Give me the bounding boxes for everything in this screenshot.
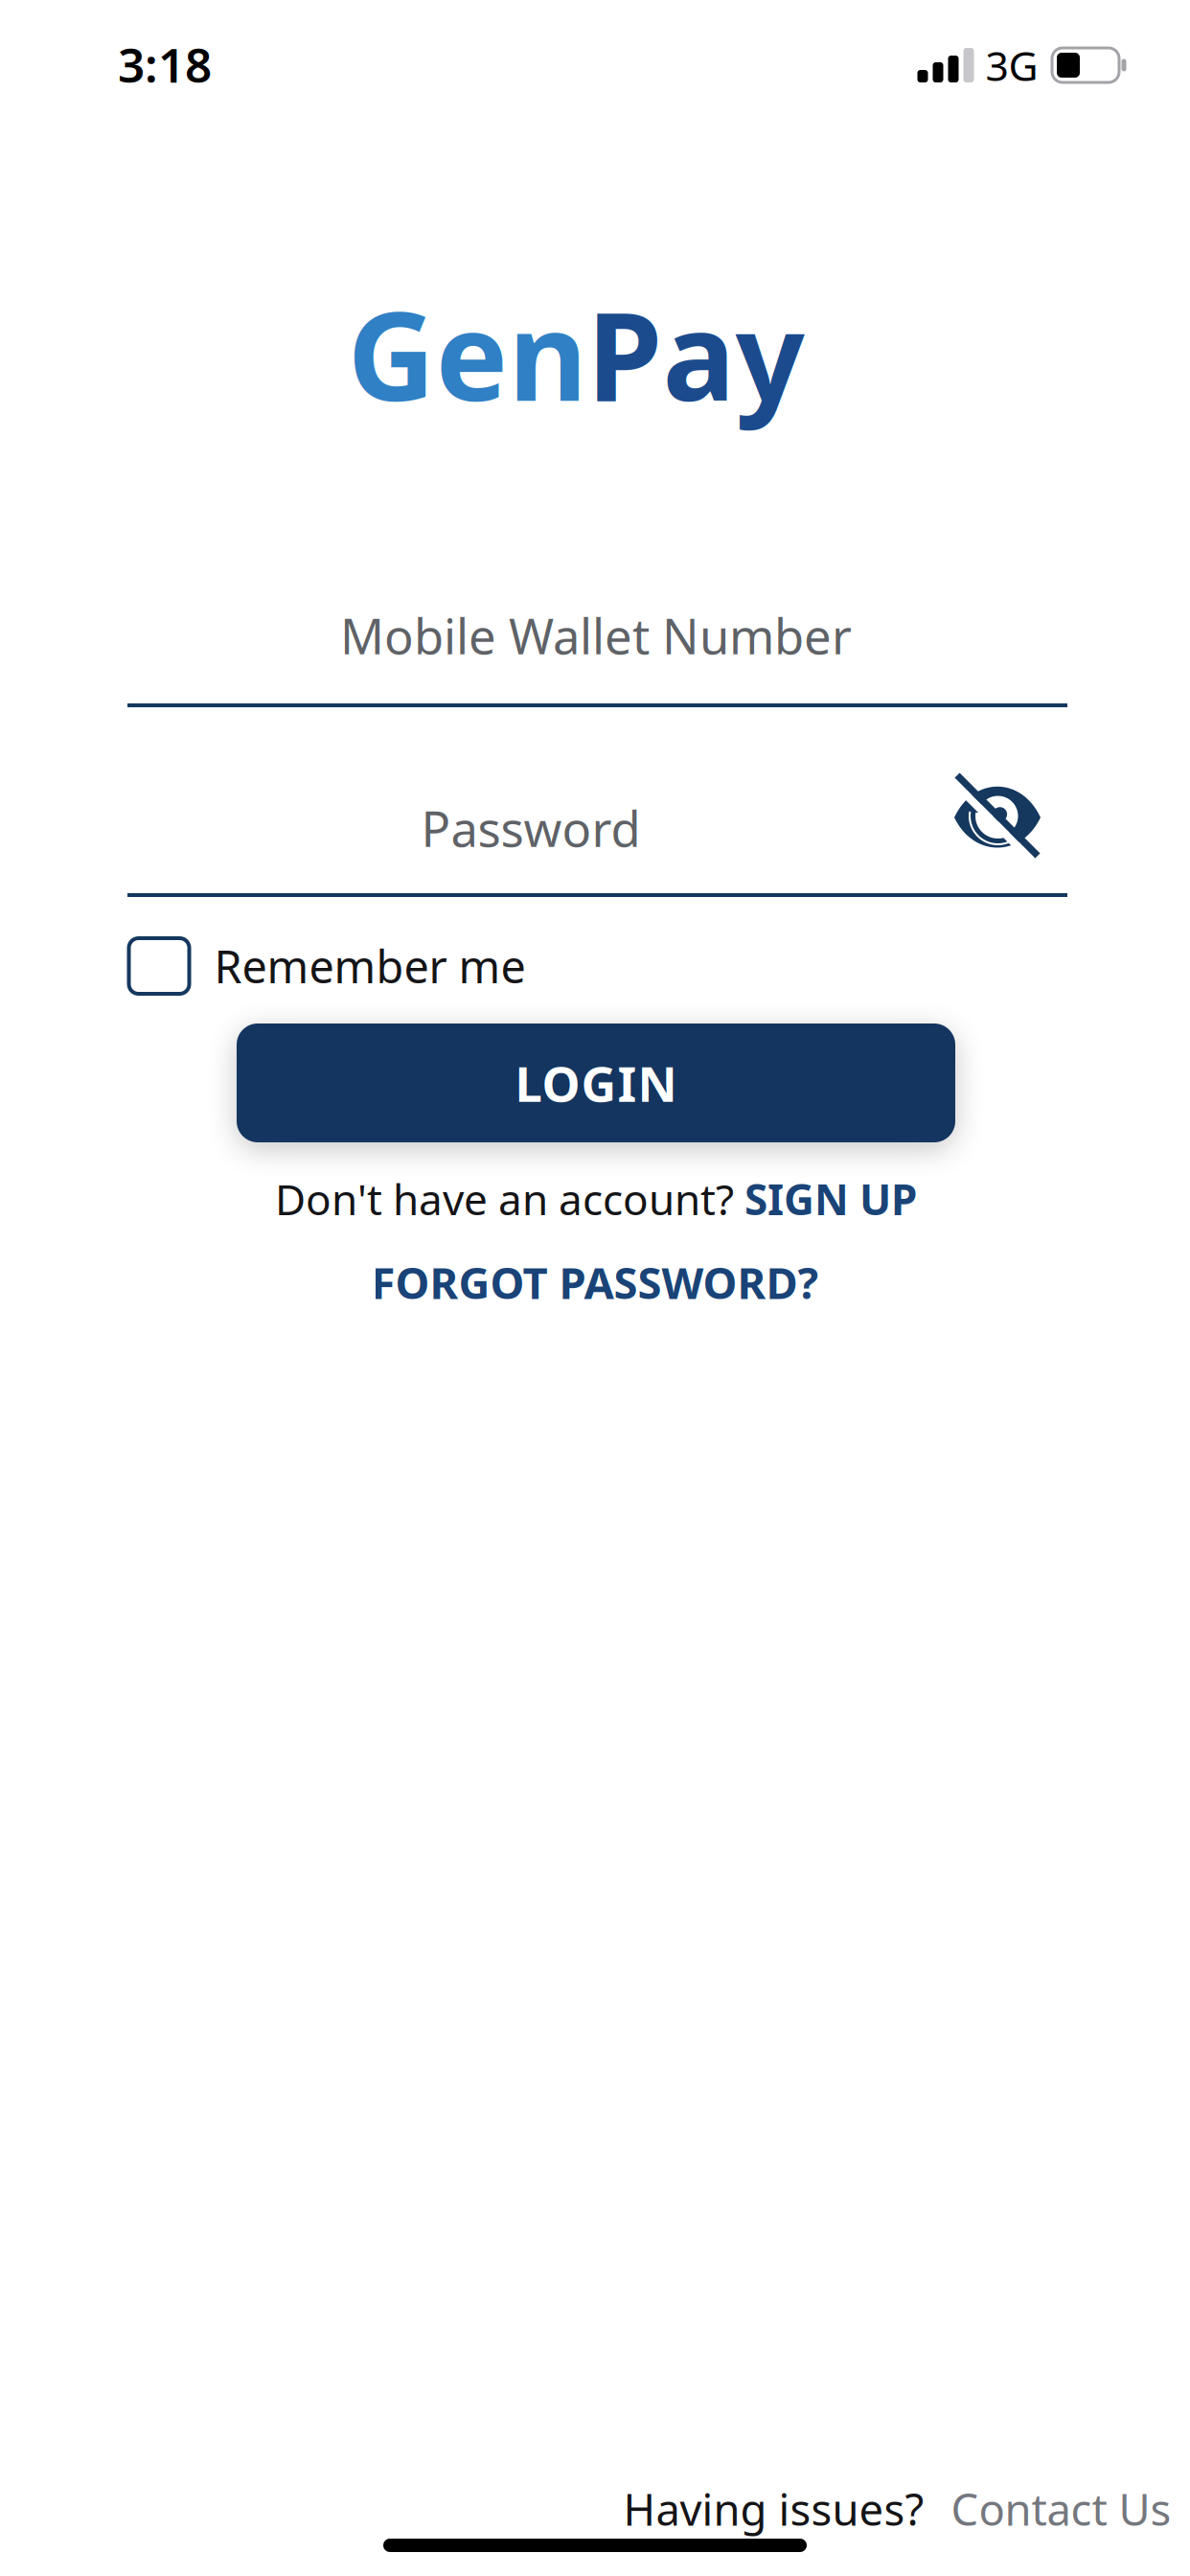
staticText: Mobile Wallet Number (340, 603, 852, 668)
button[interactable]: SIGN UP (744, 1171, 917, 1227)
staticText: Having issues? (623, 2480, 924, 2538)
staticText: Gen (347, 273, 587, 434)
button[interactable]: Mobile Wallet Number (127, 575, 1067, 707)
button[interactable] (950, 768, 1045, 863)
staticText: Password (421, 796, 641, 860)
button[interactable]: Contact Us (951, 2480, 1171, 2538)
staticText: Contact Us (951, 2480, 1171, 2538)
button[interactable]: LOGIN (237, 1023, 955, 1142)
staticText: Don't have an account? (275, 1171, 734, 1227)
button[interactable]: Password (127, 765, 1067, 897)
button[interactable]: Remember me (129, 936, 1190, 996)
staticText: FORGOT PASSWORD? (371, 1253, 819, 1311)
button[interactable]: FORGOT PASSWORD? (371, 1253, 819, 1311)
staticText: SIGN UP (744, 1171, 917, 1227)
staticText: LOGIN (515, 1051, 677, 1115)
staticText: Pay (587, 273, 804, 434)
staticText: 3:18 (118, 33, 212, 96)
staticText: 3G (985, 38, 1038, 92)
staticText: Remember me (214, 936, 526, 996)
